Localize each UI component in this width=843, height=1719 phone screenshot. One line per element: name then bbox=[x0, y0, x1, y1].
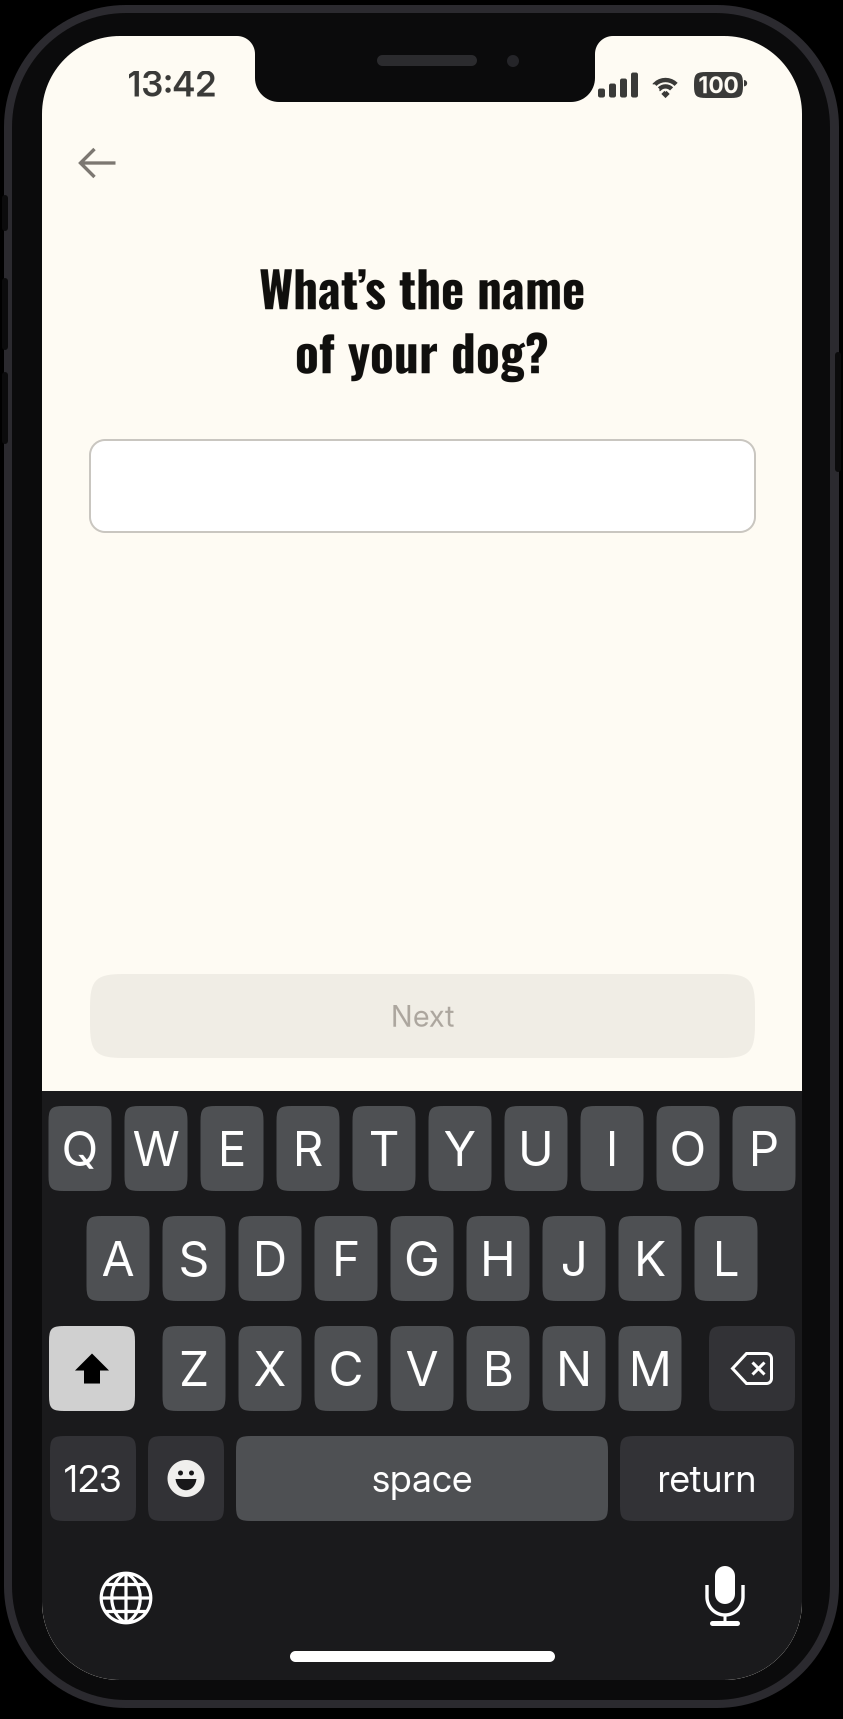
staticText: G bbox=[404, 1229, 440, 1288]
staticText: N bbox=[556, 1339, 592, 1398]
staticText: J bbox=[560, 1229, 587, 1288]
button[interactable]: Dictate bbox=[680, 1551, 770, 1641]
button[interactable]: Q bbox=[48, 1106, 111, 1191]
button[interactable]: N bbox=[542, 1326, 605, 1411]
staticText: What’s the name bbox=[259, 250, 585, 323]
staticText: X bbox=[253, 1339, 286, 1398]
button[interactable]: 123 bbox=[50, 1436, 136, 1521]
button[interactable]: A bbox=[86, 1216, 149, 1301]
staticText: Z bbox=[179, 1339, 209, 1398]
staticText: O bbox=[669, 1119, 706, 1178]
staticText: B bbox=[482, 1339, 513, 1398]
button[interactable]: F bbox=[314, 1216, 377, 1301]
button[interactable]: Shift bbox=[49, 1326, 135, 1411]
button[interactable]: R bbox=[276, 1106, 339, 1191]
button[interactable]: S bbox=[162, 1216, 225, 1301]
button[interactable]: V bbox=[390, 1326, 453, 1411]
staticText: U bbox=[518, 1119, 554, 1178]
button[interactable]: Y bbox=[428, 1106, 491, 1191]
staticText: W bbox=[132, 1119, 179, 1178]
button[interactable]: Change keyboard bbox=[81, 1553, 171, 1643]
staticText: K bbox=[634, 1229, 666, 1288]
staticText: V bbox=[405, 1339, 438, 1398]
staticText: D bbox=[252, 1229, 287, 1288]
staticText: 13:42 bbox=[127, 63, 216, 105]
button[interactable]: space bbox=[236, 1436, 608, 1521]
button[interactable]: P bbox=[732, 1106, 795, 1191]
button[interactable]: B bbox=[466, 1326, 529, 1411]
staticText: 123 bbox=[64, 1456, 122, 1501]
button[interactable]: return bbox=[620, 1436, 794, 1521]
staticText: P bbox=[748, 1119, 779, 1178]
staticText: S bbox=[178, 1229, 209, 1288]
button[interactable]: Z bbox=[162, 1326, 225, 1411]
button[interactable]: J bbox=[542, 1216, 605, 1301]
staticText: Q bbox=[61, 1119, 98, 1178]
staticText: R bbox=[292, 1119, 323, 1178]
button[interactable]: O bbox=[656, 1106, 719, 1191]
button[interactable]: T bbox=[352, 1106, 415, 1191]
button[interactable]: I bbox=[580, 1106, 643, 1191]
staticText: 100 bbox=[698, 71, 738, 99]
staticText: F bbox=[332, 1229, 360, 1288]
button[interactable]: Next bbox=[90, 974, 755, 1058]
staticText: Y bbox=[443, 1119, 476, 1178]
button[interactable]: K bbox=[618, 1216, 681, 1301]
button[interactable]: W bbox=[124, 1106, 187, 1191]
staticText: return bbox=[657, 1456, 756, 1501]
staticText: L bbox=[712, 1229, 739, 1288]
button[interactable]: E bbox=[200, 1106, 263, 1191]
staticText: T bbox=[368, 1119, 399, 1178]
button[interactable]: Back bbox=[58, 128, 138, 198]
staticText: E bbox=[217, 1119, 246, 1178]
button[interactable]: U bbox=[504, 1106, 567, 1191]
button[interactable]: C bbox=[314, 1326, 377, 1411]
button[interactable]: H bbox=[466, 1216, 529, 1301]
button[interactable]: M bbox=[618, 1326, 681, 1411]
staticText: of your dog? bbox=[295, 314, 549, 387]
staticText: M bbox=[628, 1339, 671, 1398]
staticText: A bbox=[101, 1229, 134, 1288]
button[interactable]: Delete bbox=[709, 1326, 795, 1411]
staticText: I bbox=[605, 1119, 618, 1178]
staticText: H bbox=[480, 1229, 516, 1288]
staticText: space bbox=[372, 1456, 472, 1501]
button[interactable]: L bbox=[694, 1216, 757, 1301]
button[interactable]: Emoji bbox=[148, 1436, 224, 1521]
button[interactable]: G bbox=[390, 1216, 453, 1301]
button[interactable]: X bbox=[238, 1326, 301, 1411]
button[interactable]: D bbox=[238, 1216, 301, 1301]
staticText: Next bbox=[391, 998, 454, 1034]
staticText: C bbox=[328, 1339, 363, 1398]
